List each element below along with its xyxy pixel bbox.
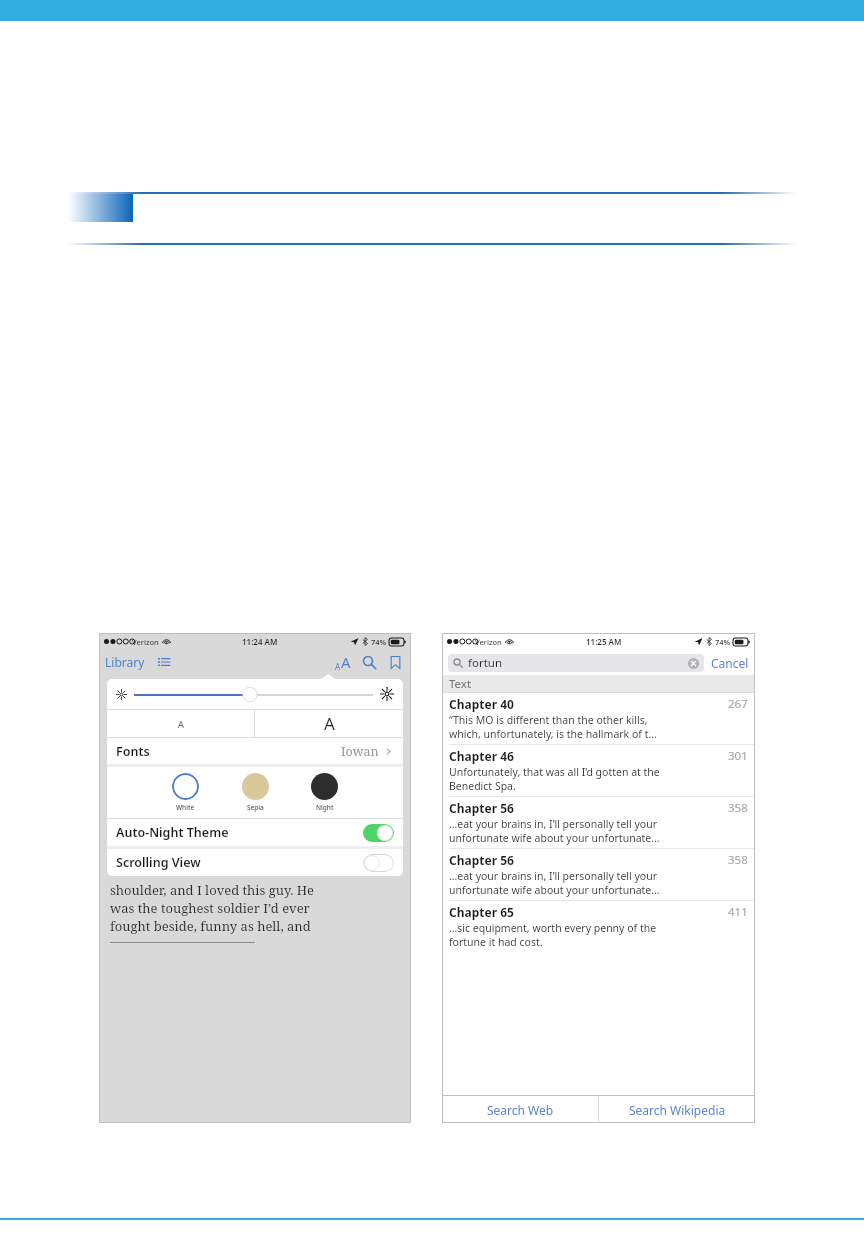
staticText: fortune it had cost. <box>449 935 543 949</box>
staticText: Night <box>316 803 334 812</box>
staticText: Fonts <box>116 743 150 760</box>
staticText: 74% <box>371 637 387 647</box>
staticText: Chapter 56 <box>449 800 514 816</box>
staticText: 74% <box>715 637 731 647</box>
staticText: Chapter 65 <box>449 904 514 920</box>
button[interactable]: A <box>255 710 403 737</box>
staticText: A <box>324 712 335 735</box>
staticText: A <box>335 661 341 672</box>
staticText: Benedict Spa. <box>449 779 516 793</box>
staticText: …sic equipment, worth every penny of the <box>449 921 657 935</box>
staticText: “This MO is different than the other kil… <box>449 713 648 727</box>
staticText: A <box>178 718 184 730</box>
button[interactable] <box>363 854 394 872</box>
button[interactable]: Scrolling View <box>107 849 403 876</box>
button[interactable]: Search <box>362 655 377 670</box>
button[interactable]: Table of contents <box>157 655 171 669</box>
button[interactable]: Cancel <box>711 655 749 671</box>
staticText: Iowan <box>341 743 379 760</box>
button[interactable]: Night <box>311 773 338 812</box>
staticText: Sepia <box>247 803 264 812</box>
button[interactable]: A <box>107 710 254 737</box>
staticText: fought beside, funny as hell, and <box>110 917 311 935</box>
staticText: Search Web <box>487 1102 554 1118</box>
staticText: 11:25 AM <box>586 636 622 647</box>
staticText: unfortunate wife about your unfortunate… <box>449 883 660 897</box>
staticText: Scrolling View <box>116 854 201 871</box>
staticText: …eat your brains in, I’ll personally tel… <box>449 869 657 883</box>
staticText: Chapter 40 <box>449 696 514 712</box>
button[interactable]: Chapter 46 <box>442 745 755 796</box>
button[interactable]: Sepia <box>242 773 269 812</box>
button[interactable]: White <box>172 773 199 812</box>
staticText: Search Wikipedia <box>629 1102 726 1118</box>
staticText: White <box>176 803 195 812</box>
staticText: Verizon <box>132 637 159 647</box>
button[interactable]: Search Wikipedia <box>599 1096 755 1123</box>
staticText: 411 <box>728 904 748 920</box>
staticText: unfortunate wife about your unfortunate… <box>449 831 660 845</box>
staticText: 267 <box>728 696 748 712</box>
button[interactable] <box>363 824 394 842</box>
button[interactable]: Fonts <box>107 738 403 764</box>
staticText: A <box>341 652 351 672</box>
button[interactable]: Chapter 65 <box>442 901 755 952</box>
button[interactable]: Text options <box>335 652 351 672</box>
staticText: Auto-Night Theme <box>116 824 229 841</box>
button[interactable]: Chapter 56 <box>442 849 755 900</box>
button[interactable]: Bookmark <box>388 655 403 670</box>
button[interactable]: Chapter 56 <box>442 797 755 848</box>
staticText: which, unfortunately, is the hallmark of… <box>449 727 657 741</box>
staticText: …eat your brains in, I’ll personally tel… <box>449 817 657 831</box>
staticText: shoulder, and I loved this guy. He <box>110 881 315 899</box>
staticText: 358 <box>728 800 748 816</box>
button[interactable]: Search Web <box>442 1096 598 1123</box>
button[interactable]: Chapter 40 <box>442 693 755 744</box>
staticText: Text <box>449 676 472 692</box>
staticText: 301 <box>728 748 748 764</box>
staticText: was the toughest soldier I’d ever <box>110 899 310 917</box>
button[interactable]: Clear text <box>688 658 699 669</box>
staticText: 358 <box>728 852 748 868</box>
staticText: Chapter 46 <box>449 748 514 764</box>
staticText: Chapter 56 <box>449 852 514 868</box>
staticText: fortun <box>468 655 503 671</box>
button[interactable]: Auto-Night Theme <box>107 819 403 846</box>
button[interactable]: fortun <box>448 654 704 672</box>
staticText: 11:24 AM <box>242 636 278 647</box>
button[interactable]: Library <box>105 654 145 670</box>
staticText: Unfortunately, that was all I’d gotten a… <box>449 765 660 779</box>
staticText: Verizon <box>475 637 502 647</box>
